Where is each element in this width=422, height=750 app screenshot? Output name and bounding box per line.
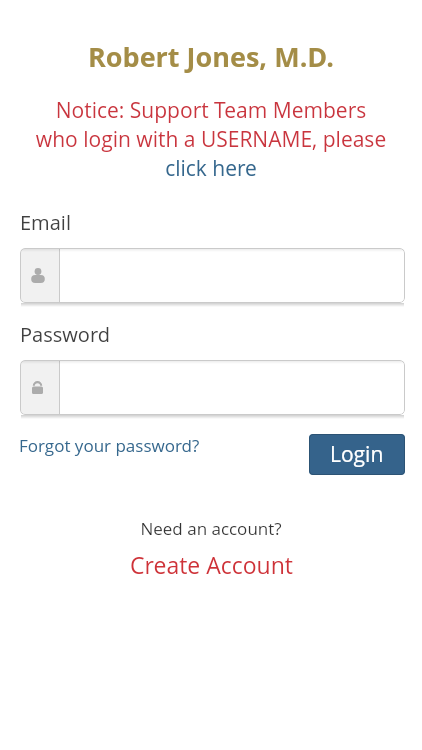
button[interactable]: Forgot your password?	[19, 434, 200, 457]
staticText: Notice: Support Team Members who login w…	[0, 96, 422, 154]
staticText: Email	[20, 209, 71, 236]
button[interactable]: Create Account	[0, 549, 422, 580]
button[interactable]: Login	[309, 434, 405, 475]
staticText: Robert Jones, M.D.	[0, 38, 422, 75]
staticText: Password	[20, 321, 110, 348]
staticText: Login	[330, 440, 384, 469]
staticText: Create Account	[130, 549, 293, 580]
button[interactable]	[20, 360, 405, 415]
staticText: click here	[165, 154, 257, 183]
staticText: Need an account?	[0, 517, 422, 540]
button[interactable]	[20, 248, 405, 303]
button[interactable]: click here	[0, 154, 422, 183]
